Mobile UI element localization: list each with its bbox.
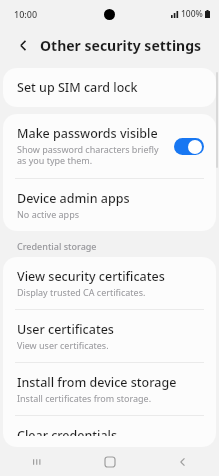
staticText: 100% xyxy=(181,8,203,20)
staticText: Display trusted CA certificates. xyxy=(17,286,146,298)
button[interactable]: View security certificates xyxy=(3,257,216,309)
staticText: Clear credentials xyxy=(17,427,118,436)
button[interactable]: Back xyxy=(146,447,219,476)
staticText: Make passwords visible xyxy=(17,125,158,142)
button[interactable]: Home xyxy=(73,447,146,476)
staticText: Show password characters briefly as you … xyxy=(17,143,166,167)
staticText: User certificates xyxy=(17,321,114,338)
staticText: Other security settings xyxy=(40,36,202,55)
button[interactable]: Clear credentials xyxy=(3,416,216,447)
staticText: Credential storage xyxy=(17,240,97,252)
staticText: Install from device storage xyxy=(17,374,177,391)
staticText: View user certificates. xyxy=(17,339,109,351)
button[interactable]: User certificates xyxy=(3,310,216,362)
button[interactable]: Device admin apps xyxy=(3,179,216,231)
staticText: 10:00 xyxy=(14,8,38,20)
staticText: No active apps xyxy=(17,208,79,220)
staticText: Device admin apps xyxy=(17,190,130,207)
button[interactable]: Back xyxy=(12,34,34,56)
staticText: View security certificates xyxy=(17,268,165,285)
staticText: Install certificates from storage. xyxy=(17,392,152,404)
button[interactable]: Set up SIM card lock xyxy=(3,68,216,107)
staticText: Set up SIM card lock xyxy=(17,79,138,96)
button[interactable]: Make passwords visible xyxy=(3,114,216,178)
button[interactable]: Make passwords visible toggle xyxy=(174,138,204,155)
button[interactable]: Recent apps xyxy=(0,447,73,476)
button[interactable]: Install from device storage xyxy=(3,363,216,415)
